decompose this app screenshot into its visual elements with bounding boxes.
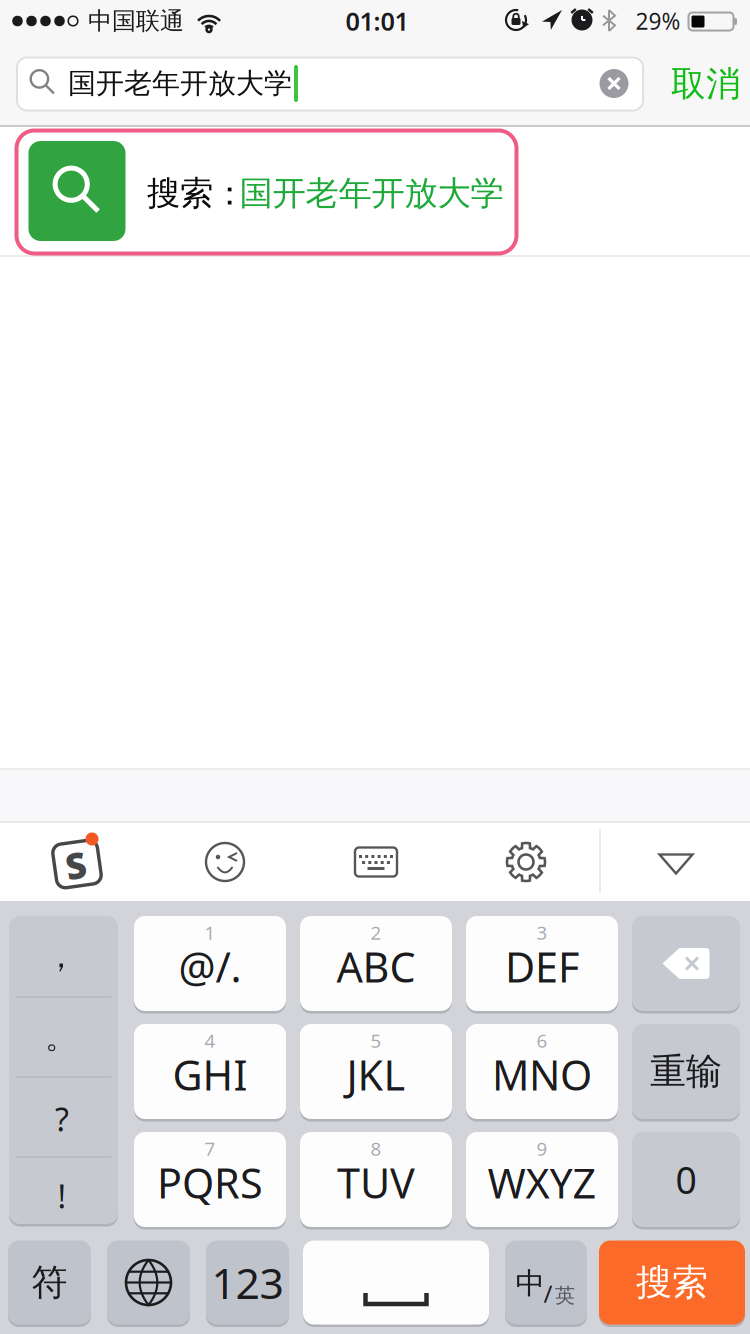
staticText: 7 <box>204 1136 215 1161</box>
staticText: 。 <box>45 1017 77 1057</box>
staticText: 重输 <box>650 1049 722 1094</box>
button[interactable]: 搜索： <box>16 130 516 253</box>
staticText: TUV <box>337 1155 415 1210</box>
staticText: 123 <box>211 1254 283 1311</box>
staticText: 中 <box>515 1265 544 1301</box>
button[interactable]: ， <box>9 916 118 1224</box>
button[interactable]: 搜索 <box>599 1240 745 1324</box>
button[interactable]: Emoji <box>190 827 260 897</box>
staticText: 符 <box>31 1260 67 1305</box>
staticText: 0 <box>675 1155 696 1204</box>
button[interactable]: Delete <box>632 916 740 1011</box>
staticText: 3 <box>536 920 547 945</box>
staticText: 搜索 <box>636 1260 708 1305</box>
button[interactable]: 取消 <box>656 56 750 112</box>
button[interactable]: Settings <box>491 827 561 897</box>
staticText: PQRS <box>157 1155 263 1210</box>
staticText: 29% <box>635 6 680 36</box>
staticText: 搜索： <box>147 173 246 214</box>
staticText: 8 <box>370 1136 381 1161</box>
staticText: MNO <box>492 1047 592 1102</box>
button[interactable]: 2 <box>300 916 452 1011</box>
button[interactable]: 123 <box>206 1240 289 1324</box>
staticText: 1 <box>204 920 215 945</box>
staticText: 4 <box>204 1028 215 1053</box>
button[interactable]: Keyboard layouts <box>341 827 411 897</box>
button[interactable]: 5 <box>300 1024 452 1119</box>
staticText: GHI <box>172 1047 247 1102</box>
staticText: 6 <box>536 1028 547 1053</box>
staticText: 国开老年开放大学 <box>68 66 292 101</box>
button[interactable]: 1 <box>134 916 286 1011</box>
staticText: ABC <box>336 939 415 994</box>
button[interactable]: 4 <box>134 1024 286 1119</box>
button[interactable]: 3 <box>466 916 618 1011</box>
button[interactable]: 重输 <box>632 1024 740 1119</box>
button[interactable]: Next keyboard <box>107 1240 190 1324</box>
button[interactable]: Chinese / English <box>505 1240 587 1324</box>
staticText: 01:01 <box>345 4 408 38</box>
staticText: 2 <box>370 920 381 945</box>
staticText: / <box>543 1278 552 1309</box>
button[interactable]: 符 <box>8 1240 91 1324</box>
button[interactable]: 0 <box>632 1132 740 1227</box>
button[interactable]: Space <box>303 1240 489 1324</box>
button[interactable]: 6 <box>466 1024 618 1119</box>
staticText: WXYZ <box>487 1155 596 1210</box>
staticText: 9 <box>536 1136 547 1161</box>
button[interactable]: 8 <box>300 1132 452 1227</box>
staticText: @/. <box>178 939 241 994</box>
staticText: 英 <box>555 1283 575 1308</box>
staticText: ， <box>45 937 77 976</box>
button[interactable]: Clear text <box>596 65 632 101</box>
staticText: 5 <box>370 1028 381 1053</box>
button[interactable]: 9 <box>466 1132 618 1227</box>
button[interactable]: Dismiss keyboard <box>643 831 709 897</box>
staticText: ! <box>57 1175 66 1217</box>
staticText: 国开老年开放大学 <box>239 173 503 214</box>
button[interactable]: Sogou <box>39 828 115 900</box>
staticText: S <box>65 841 86 889</box>
staticText: 取消 <box>671 63 741 105</box>
staticText: 中国联通 <box>88 6 184 36</box>
staticText: JKL <box>346 1047 405 1102</box>
staticText: ? <box>55 1098 69 1140</box>
button[interactable]: 7 <box>134 1132 286 1227</box>
staticText: DEF <box>505 939 579 994</box>
